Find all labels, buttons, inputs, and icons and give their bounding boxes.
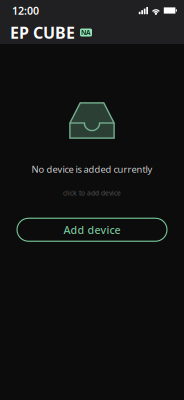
staticText: No device is added currently	[31, 163, 152, 175]
staticText: EP CUBE	[10, 22, 75, 43]
staticText: Add device	[63, 223, 120, 237]
button[interactable]: No device is added currently	[31, 102, 152, 197]
staticText: 12:00	[12, 3, 39, 18]
staticText: click to add device	[63, 188, 121, 197]
staticText: NA	[81, 28, 91, 37]
button[interactable]: Add device	[17, 218, 167, 241]
